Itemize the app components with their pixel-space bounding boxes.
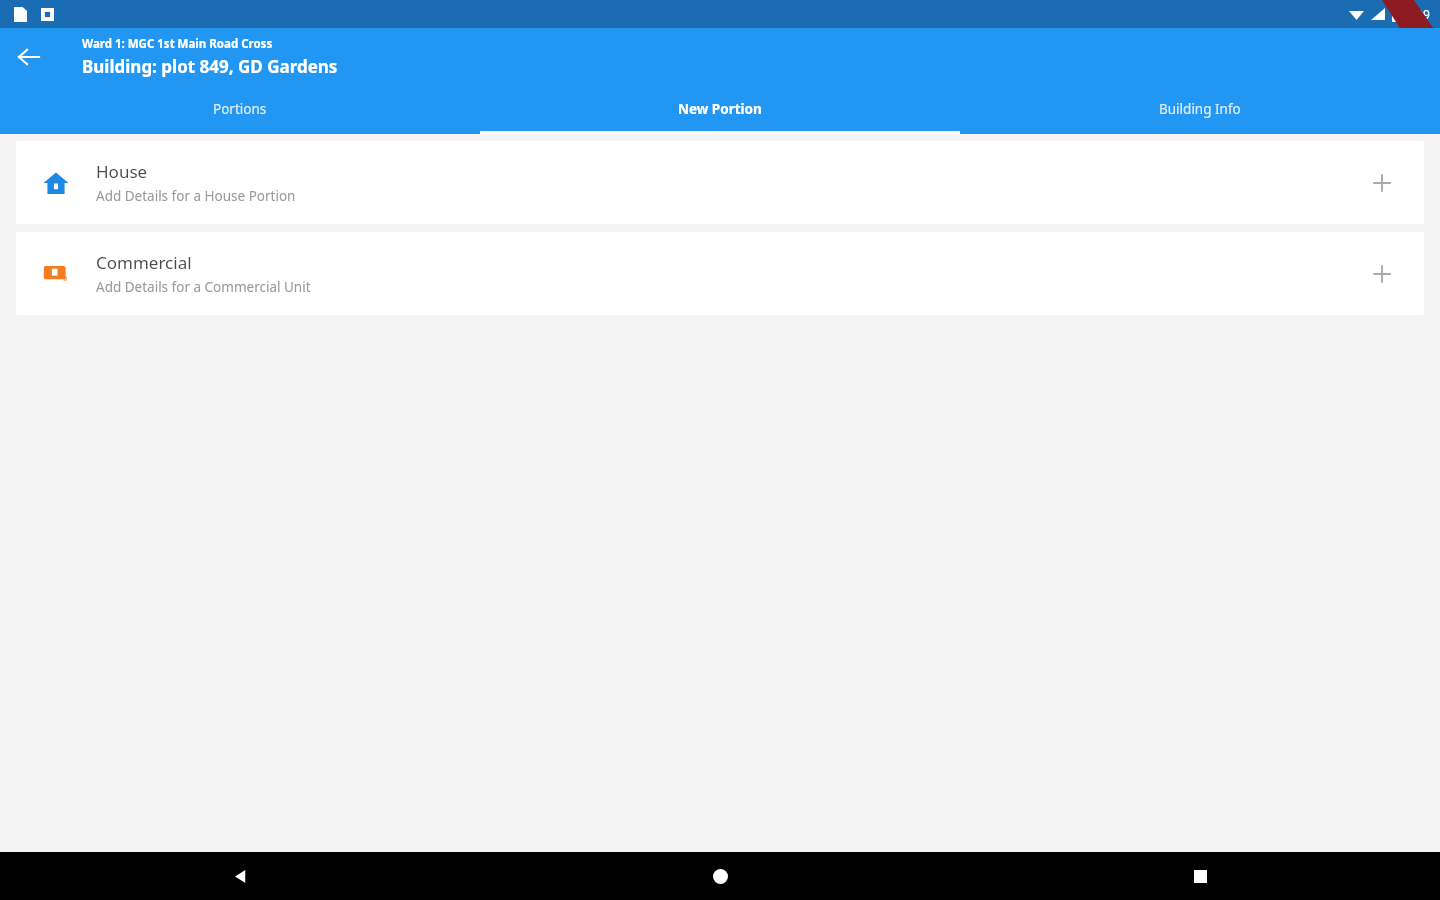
staticText: Commercial (96, 251, 192, 274)
staticText: Add Details for a Commercial Unit (96, 278, 311, 296)
button[interactable]: Portions (0, 86, 480, 131)
staticText: Add Details for a House Portion (96, 187, 296, 205)
button[interactable]: Add Commercial (1352, 244, 1412, 304)
staticText: 4:09 (1406, 6, 1430, 22)
button[interactable]: Back (0, 28, 58, 86)
staticText: Building Info (1159, 100, 1241, 118)
button[interactable]: Add House (1352, 153, 1412, 213)
staticText: New Portion (678, 100, 762, 118)
staticText: Portions (213, 100, 267, 118)
button[interactable]: New Portion (480, 86, 960, 131)
button[interactable]: Building Info (960, 86, 1440, 131)
staticText: Building: plot 849, GD Gardens (82, 55, 338, 78)
button[interactable]: Commercial (16, 232, 1424, 315)
staticText: Ward 1: MGC 1st Main Road Cross (82, 36, 273, 52)
button[interactable]: Home (480, 852, 960, 900)
button[interactable]: Back (0, 852, 480, 900)
button[interactable]: Recent apps (960, 852, 1440, 900)
button[interactable]: House (16, 141, 1424, 224)
staticText: House (96, 160, 148, 183)
